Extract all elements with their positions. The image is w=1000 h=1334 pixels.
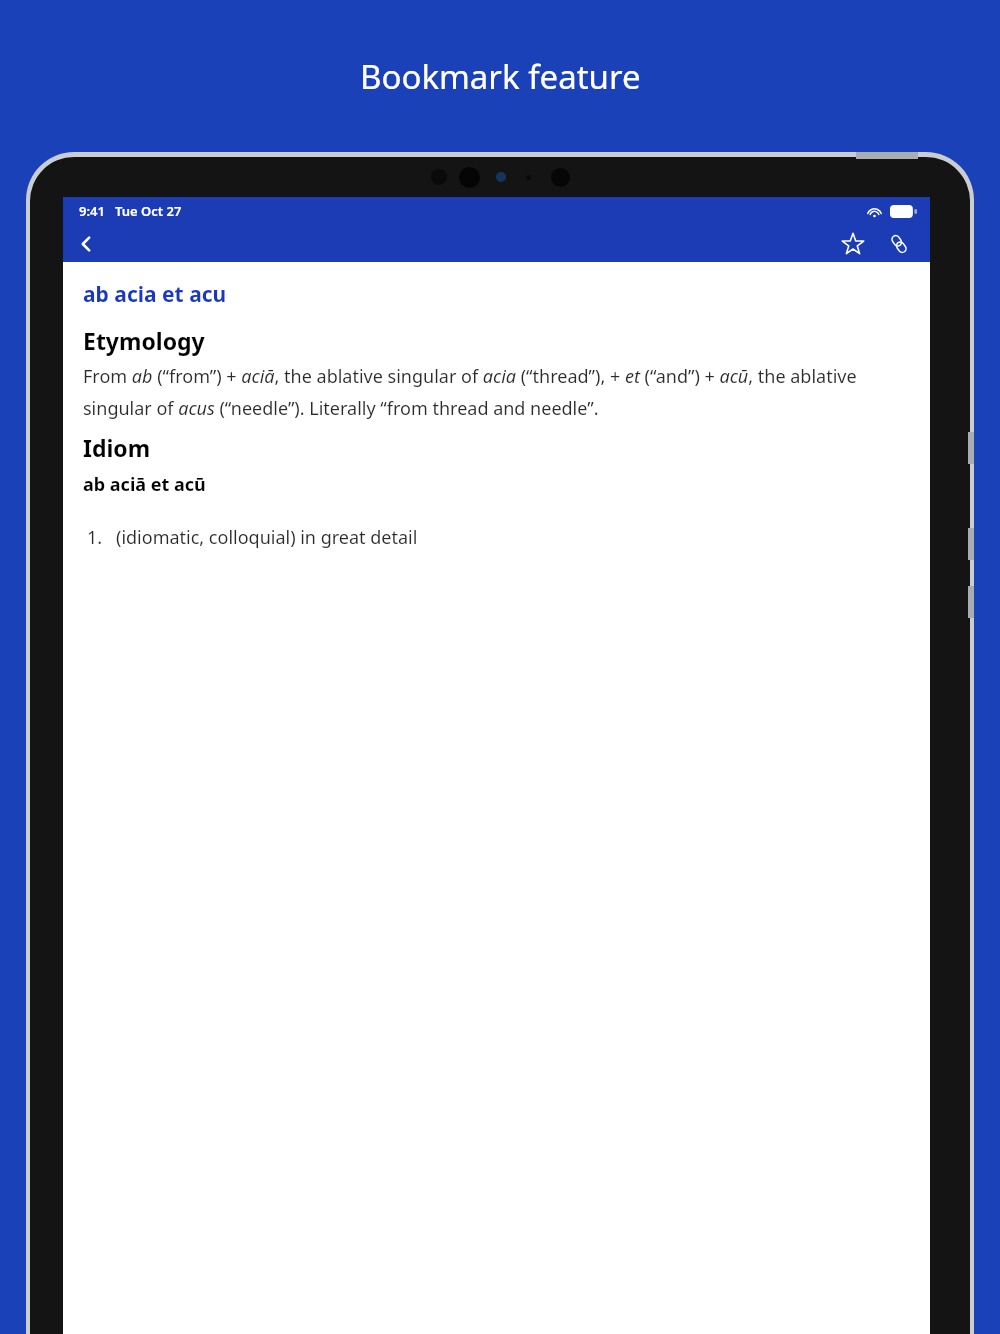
staticText: Bookmark feature	[360, 54, 641, 99]
staticText: 9:41	[79, 202, 105, 220]
staticText: 1.	[87, 525, 103, 550]
staticText: Idiom	[83, 432, 151, 463]
staticText: (idiomatic, colloquial) in great detail	[116, 525, 418, 550]
button[interactable]: Copy link	[880, 225, 918, 262]
staticText: ab aciā et acū	[83, 472, 206, 497]
button[interactable]: Back	[67, 225, 105, 262]
staticText: Etymology	[83, 325, 205, 356]
staticText: From ab (“from”) + aciā, the ablative si…	[83, 364, 908, 420]
staticText: ab acia et acu	[83, 280, 227, 309]
staticText: Tue Oct 27	[115, 202, 182, 220]
button[interactable]: Bookmark	[834, 225, 872, 262]
